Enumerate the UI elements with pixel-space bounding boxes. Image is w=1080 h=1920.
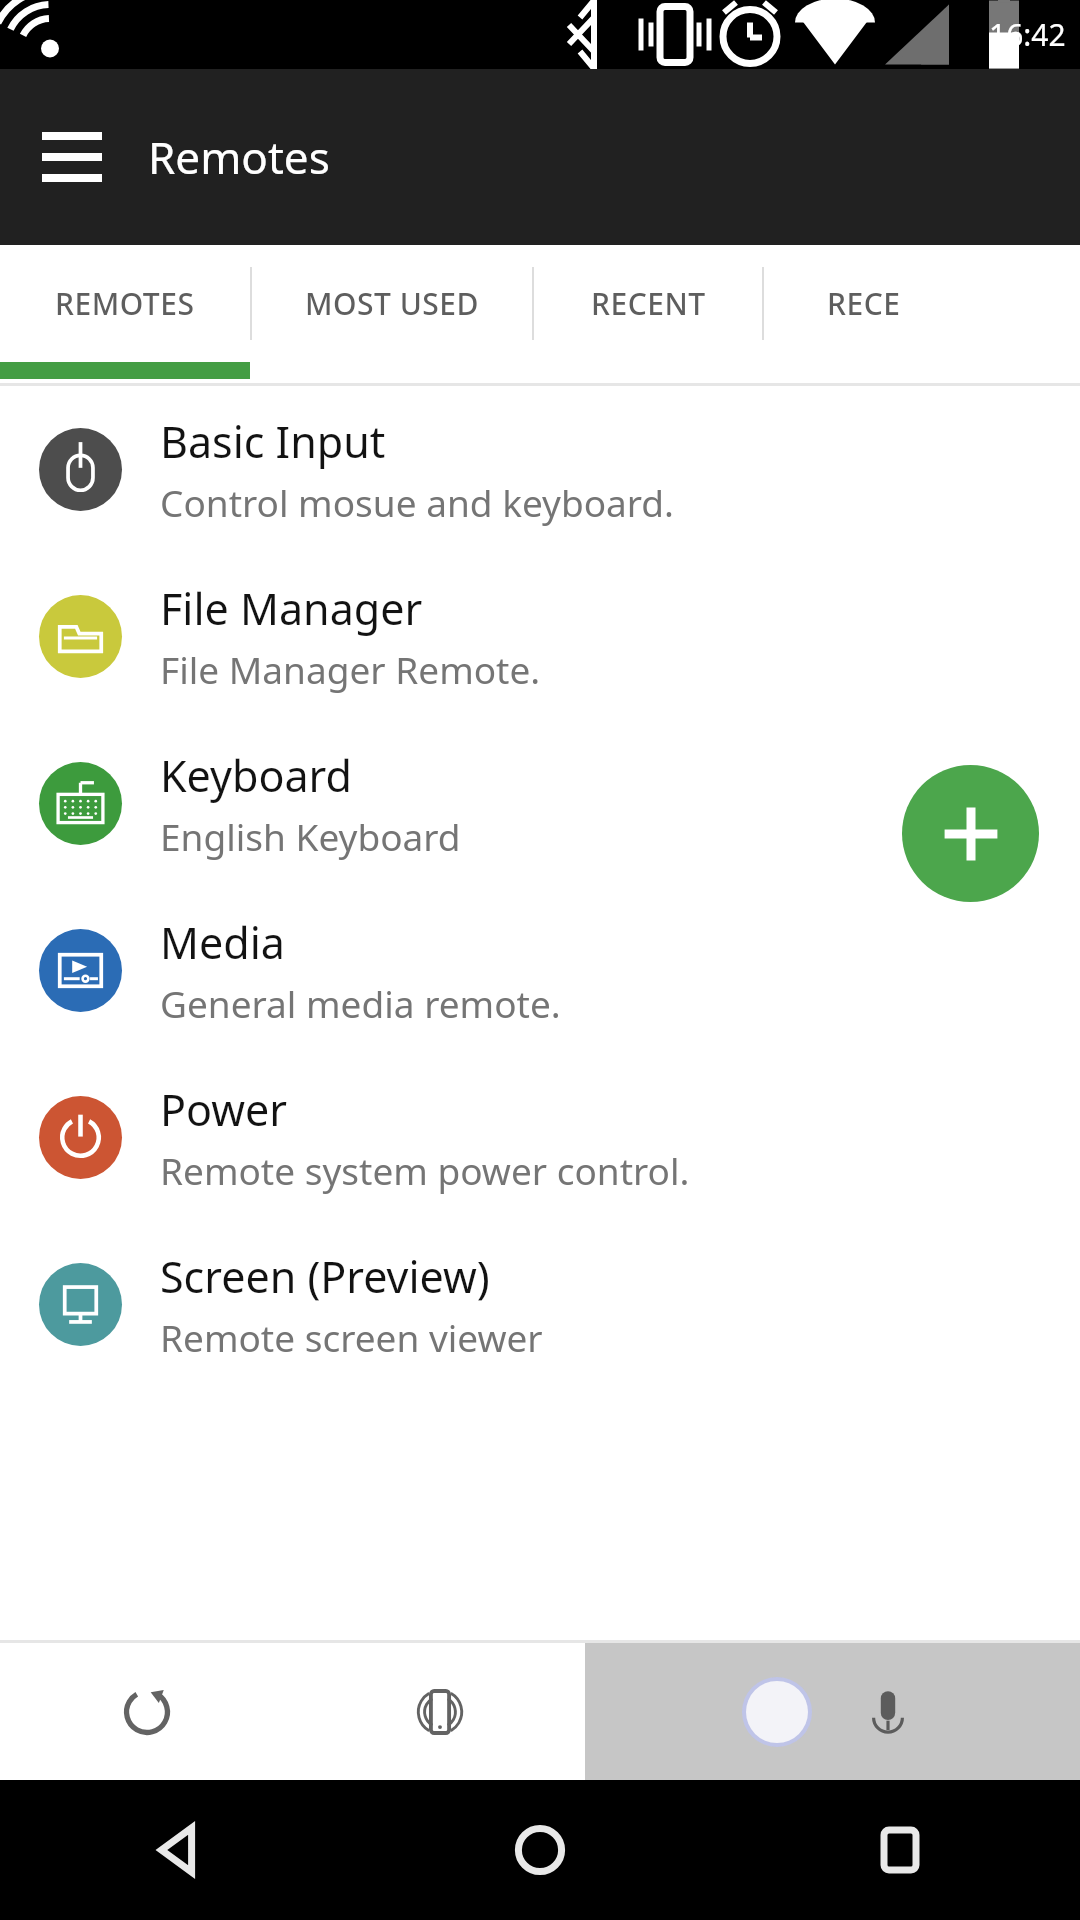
staticText: REMOTES	[55, 283, 195, 324]
button[interactable]: Add remote	[902, 765, 1039, 902]
button[interactable]: Screen (Preview)	[0, 1221, 1080, 1388]
button[interactable]: Home	[360, 1780, 720, 1920]
staticText: Control mosue and keyboard.	[160, 477, 675, 527]
button[interactable]: Touchpad	[742, 1677, 812, 1747]
staticText: RECENT	[591, 283, 706, 324]
button[interactable]: Power	[0, 1054, 1080, 1221]
button[interactable]: Vibrate device	[294, 1643, 585, 1780]
staticText: General media remote.	[160, 978, 561, 1028]
button[interactable]: Media	[0, 887, 1080, 1054]
button[interactable]: File Manager	[0, 553, 1080, 720]
staticText: Remotes	[148, 127, 330, 187]
staticText: Basic Input	[160, 412, 386, 471]
staticText: Media	[160, 913, 285, 972]
staticText: 16:42	[989, 14, 1066, 55]
button[interactable]: RECENT	[534, 245, 762, 362]
staticText: Remote system power control.	[160, 1145, 690, 1195]
staticText: File Manager Remote.	[160, 644, 541, 694]
staticText: Keyboard	[160, 746, 352, 805]
staticText: Screen (Preview)	[160, 1247, 490, 1306]
button[interactable]: Back	[0, 1780, 360, 1920]
staticText: Power	[160, 1080, 287, 1139]
staticText: MOST USED	[305, 283, 479, 324]
button[interactable]: Recent apps	[720, 1780, 1080, 1920]
button[interactable]: RECE	[764, 245, 964, 362]
staticText: RECE	[827, 283, 901, 324]
staticText: English Keyboard	[160, 811, 461, 861]
staticText: File Manager	[160, 579, 423, 638]
button[interactable]: Open navigation drawer	[24, 109, 120, 205]
staticText: Remote screen viewer	[160, 1312, 543, 1362]
button[interactable]: Keyboard	[0, 720, 1080, 887]
button[interactable]: Basic Input	[0, 386, 1080, 553]
button[interactable]: MOST USED	[252, 245, 532, 362]
button[interactable]: Refresh	[0, 1643, 294, 1780]
button[interactable]: Voice input	[852, 1676, 924, 1748]
button[interactable]: REMOTES	[0, 245, 250, 362]
